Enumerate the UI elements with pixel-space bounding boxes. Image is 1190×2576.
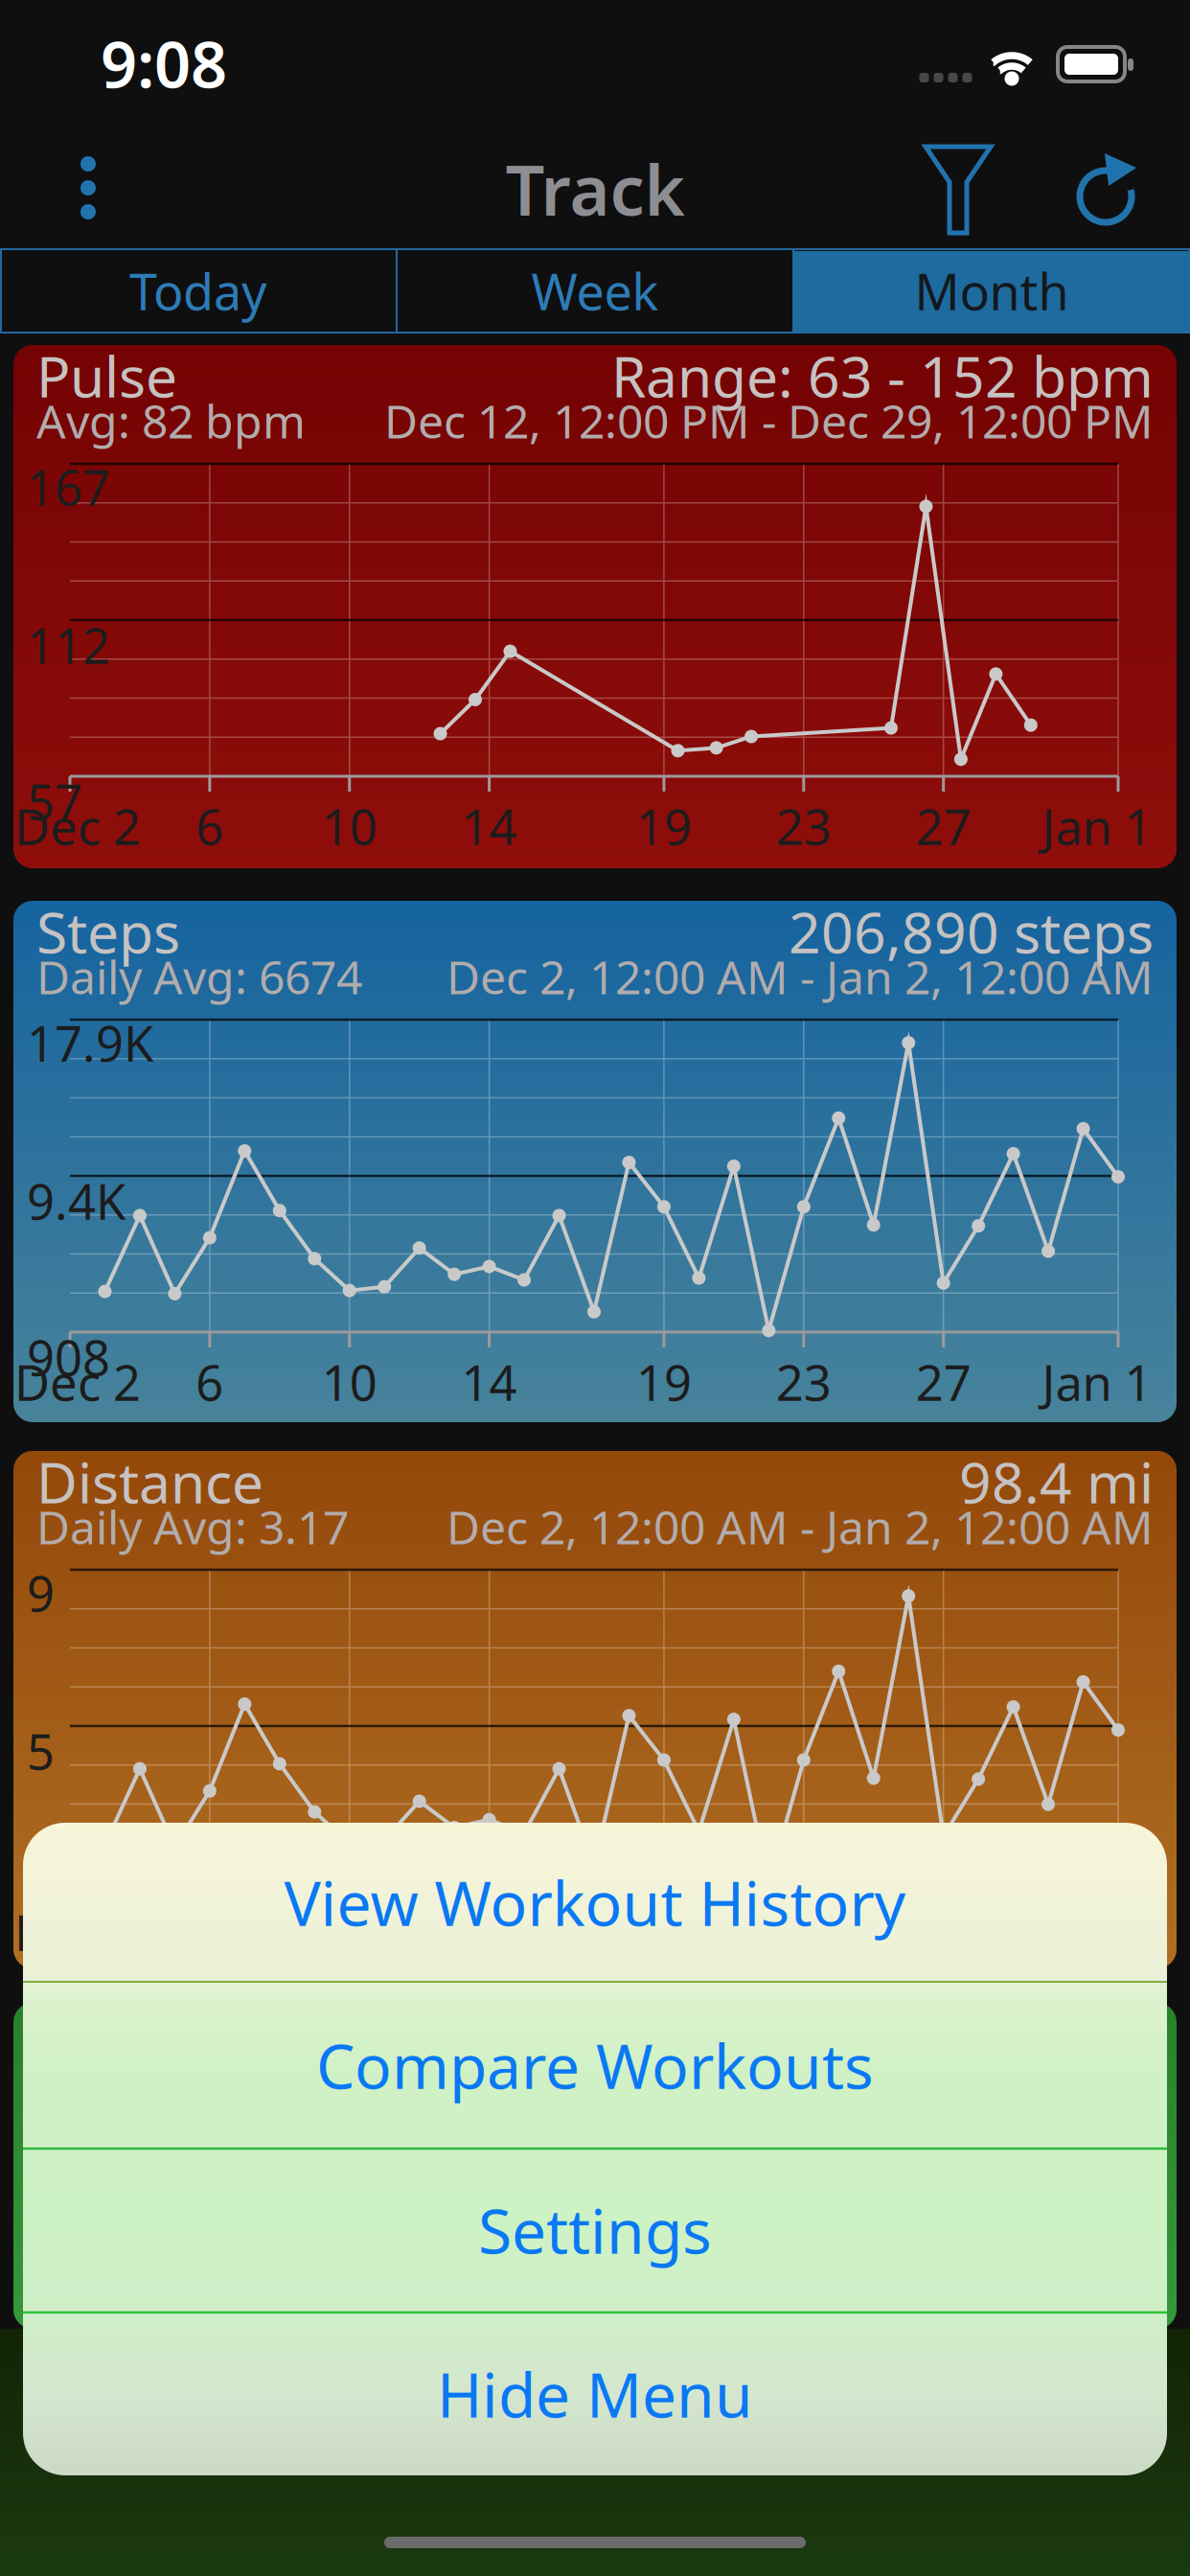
staticText: Month [915,258,1069,324]
button[interactable]: Menu [59,145,117,231]
staticText: Pulse [36,338,177,413]
staticText: 19 [636,1900,692,1964]
button[interactable]: Today [2,250,395,332]
staticText: 98.4 mi [959,1444,1154,1519]
staticText: Range: 63 - 152 bpm [611,338,1154,413]
staticText: 27 [916,794,971,858]
staticText: Distance [36,1444,263,1519]
staticText: 14 [461,1900,517,1964]
staticText: 10 [322,794,377,858]
staticText: 908 [27,1325,110,1389]
staticText: Settings [478,2189,712,2271]
staticText: Compare Workouts [316,2024,874,2106]
staticText: 112 [27,613,110,677]
staticText: Dec 2 [14,1350,141,1414]
staticText: Track [505,143,685,235]
button[interactable]: Filter [923,142,994,238]
staticText: 14 [461,1350,517,1414]
staticText: Jan 1 [1042,794,1152,858]
staticText: 14 [461,794,517,858]
staticText: 206,890 steps [789,894,1154,969]
staticText: 5 [27,1719,55,1783]
staticText: 19 [636,1350,692,1414]
button[interactable]: Settings [23,2150,1167,2311]
staticText: Dec 2 [14,1900,141,1964]
button[interactable]: Week [399,250,791,332]
staticText: View Workout History [284,1862,906,1943]
staticText: 10 [322,1350,377,1414]
staticText: Dec 12, 12:00 PM - Dec 29, 12:00 PM [384,390,1154,451]
staticText: 9 [27,1561,55,1625]
staticText: 23 [776,1900,831,1964]
staticText: 6 [196,1350,224,1414]
staticText: 19 [636,794,692,858]
button[interactable]: Month [795,250,1188,332]
button[interactable]: View Workout History [23,1824,1167,1981]
button[interactable]: Refresh [1072,151,1141,228]
staticText: 9.4K [27,1169,126,1233]
staticText: 6 [196,794,224,858]
staticText: 9:08 [101,21,227,106]
staticText: Dec 2 [14,794,141,858]
button[interactable]: Compare Workouts [23,1984,1167,2147]
staticText: Week [531,258,659,324]
staticText: Dec 2, 12:00 AM - Jan 2, 12:00 AM [446,1496,1154,1557]
staticText: 17.9K [27,1010,153,1075]
button[interactable]: Hide Menu [23,2314,1167,2473]
staticText: 23 [776,794,831,858]
staticText: Jan 1 [1042,1350,1152,1414]
staticText: 167 [27,455,110,519]
staticText: Hide Menu [437,2353,753,2435]
staticText: 27 [916,1350,971,1414]
staticText: Today [129,258,267,324]
staticText: Avg: 82 bpm [36,390,306,451]
staticText: Daily Avg: 6674 [36,946,362,1007]
staticText: 23 [776,1350,831,1414]
staticText: Daily Avg: 3.17 [36,1496,349,1557]
staticText: Dec 2, 12:00 AM - Jan 2, 12:00 AM [446,946,1154,1007]
staticText: 57 [27,769,82,833]
staticText: Steps [36,894,180,969]
staticText: 10 [322,1900,377,1964]
